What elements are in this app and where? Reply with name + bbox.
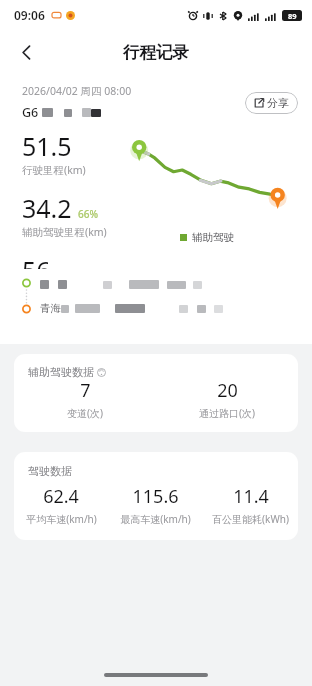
button[interactable]: Back bbox=[8, 34, 44, 70]
staticText: 变道(次) bbox=[67, 406, 103, 420]
staticText: 11.4 bbox=[233, 484, 269, 509]
staticText: 最高车速(km/h) bbox=[120, 512, 191, 526]
staticText: 51.5 bbox=[22, 129, 72, 163]
staticText: 通过路口(次) bbox=[199, 406, 255, 420]
button[interactable]: 分享 bbox=[245, 92, 298, 114]
staticText: 行程记录 bbox=[123, 42, 189, 63]
staticText: 20 bbox=[217, 378, 238, 403]
staticText: 辅助驾驶 bbox=[192, 231, 234, 244]
staticText: 2026/04/02 周四 08:00 bbox=[22, 84, 132, 98]
staticText: 34.2 bbox=[22, 191, 72, 225]
staticText: 89 bbox=[288, 11, 297, 21]
staticText: 7 bbox=[80, 378, 91, 403]
staticText: 百公里能耗(kWh) bbox=[212, 512, 289, 526]
staticText: 66% bbox=[78, 207, 98, 221]
staticText: 辅助驾驶数据 bbox=[28, 365, 94, 379]
staticText: 56 bbox=[22, 253, 51, 269]
staticText: 115.6 bbox=[132, 484, 179, 509]
staticText: 09:06 bbox=[14, 7, 45, 23]
staticText: 62.4 bbox=[43, 484, 79, 509]
button[interactable]: 驾驶数据 bbox=[14, 452, 298, 540]
staticText: 平均车速(km/h) bbox=[26, 512, 97, 526]
staticText: G6 bbox=[22, 104, 39, 121]
staticText: 青海 bbox=[40, 302, 61, 315]
staticText: 分享 bbox=[267, 96, 289, 110]
staticText: 辅助驾驶里程(km) bbox=[22, 225, 107, 239]
button[interactable]: 辅助驾驶数据 bbox=[14, 354, 298, 432]
staticText: 驾驶数据 bbox=[28, 464, 72, 478]
staticText: 行驶里程(km) bbox=[22, 163, 86, 177]
